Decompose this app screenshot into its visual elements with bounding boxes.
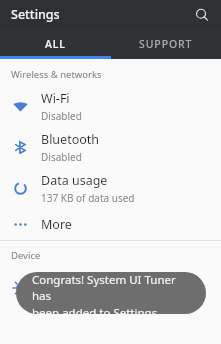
staticText: SUPPORT xyxy=(139,37,193,51)
staticText: More xyxy=(41,216,72,233)
staticText: Device xyxy=(11,249,41,262)
staticText: Adaptive brightness is ON xyxy=(41,290,163,304)
staticText: Data usage xyxy=(41,172,108,189)
button[interactable]: SUPPORT xyxy=(110,29,221,59)
button[interactable]: Display xyxy=(0,267,221,308)
staticText: ALL xyxy=(45,37,66,51)
staticText: been added to Settings xyxy=(32,305,158,314)
button[interactable]: Data usage xyxy=(0,168,221,209)
button[interactable]: More xyxy=(0,209,221,240)
staticText: Disabled xyxy=(41,150,82,164)
button[interactable]: ALL xyxy=(0,29,110,59)
staticText: Disabled xyxy=(41,109,82,123)
staticText: 137 KB of data used xyxy=(41,191,135,205)
staticText: Congrats! System UI Tuner has xyxy=(32,272,190,304)
button[interactable]: Wi-Fi xyxy=(0,86,221,127)
staticText: Wi-Fi xyxy=(41,90,70,107)
staticText: Bluetooth xyxy=(41,131,100,148)
button[interactable]: Bluetooth xyxy=(0,127,221,168)
staticText: Display xyxy=(41,271,84,288)
staticText: Wireless & networks xyxy=(11,68,102,81)
button[interactable]: Search xyxy=(191,4,213,26)
staticText: Settings xyxy=(11,6,60,23)
